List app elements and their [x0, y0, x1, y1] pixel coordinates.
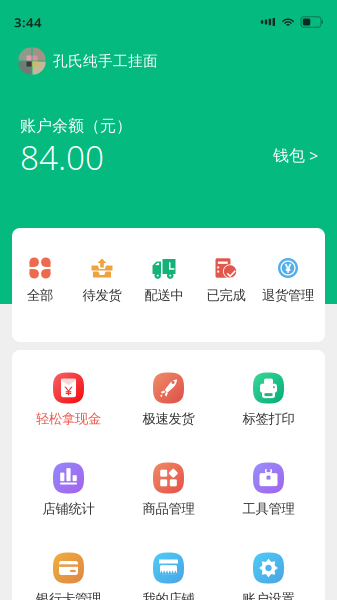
button[interactable]: 我的店铺 [118, 552, 218, 600]
button[interactable]: 配送中 [133, 228, 195, 342]
staticText: 3:44 [14, 13, 42, 31]
button[interactable]: 全部 [9, 228, 71, 342]
staticText: > [309, 145, 318, 166]
staticText: 银行卡管理 [36, 590, 101, 600]
staticText: 84.00 [20, 135, 104, 179]
button[interactable]: 账户设置 [218, 552, 318, 600]
button[interactable]: 孔氏纯手工挂面 [0, 44, 337, 78]
button[interactable]: 极速发货 [118, 372, 218, 462]
staticText: 钱包 [273, 146, 305, 165]
staticText: 标签打印 [242, 410, 294, 427]
button[interactable]: 商品管理 [118, 462, 218, 552]
button[interactable]: 银行卡管理 [18, 552, 118, 600]
staticText: 账户设置 [242, 590, 294, 600]
button[interactable]: 店铺统计 [18, 462, 118, 552]
staticText: 我的店铺 [142, 590, 194, 600]
staticText: 轻松拿现金 [36, 410, 101, 427]
button[interactable]: 已完成 [195, 228, 257, 342]
staticText: 商品管理 [142, 500, 194, 517]
staticText: 已完成 [206, 287, 245, 303]
button[interactable]: 标签打印 [218, 372, 318, 462]
button[interactable]: 轻松拿现金 [18, 372, 118, 462]
staticText: 全部 [27, 287, 53, 303]
staticText: 待发货 [82, 287, 121, 303]
button[interactable]: ¥ [257, 228, 319, 342]
button[interactable]: 工具管理 [218, 462, 318, 552]
button[interactable]: 待发货 [71, 228, 133, 342]
staticText: 孔氏纯手工挂面 [53, 52, 158, 70]
staticText: 退货管理 [262, 287, 314, 303]
staticText: 账户余额（元） [20, 116, 132, 136]
staticText: 极速发货 [142, 410, 194, 427]
staticText: 配送中 [144, 287, 183, 303]
button[interactable]: 钱包 [267, 140, 324, 171]
staticText: 店铺统计 [42, 500, 94, 517]
staticText: ¥ [284, 260, 291, 276]
staticText: 工具管理 [242, 500, 294, 517]
